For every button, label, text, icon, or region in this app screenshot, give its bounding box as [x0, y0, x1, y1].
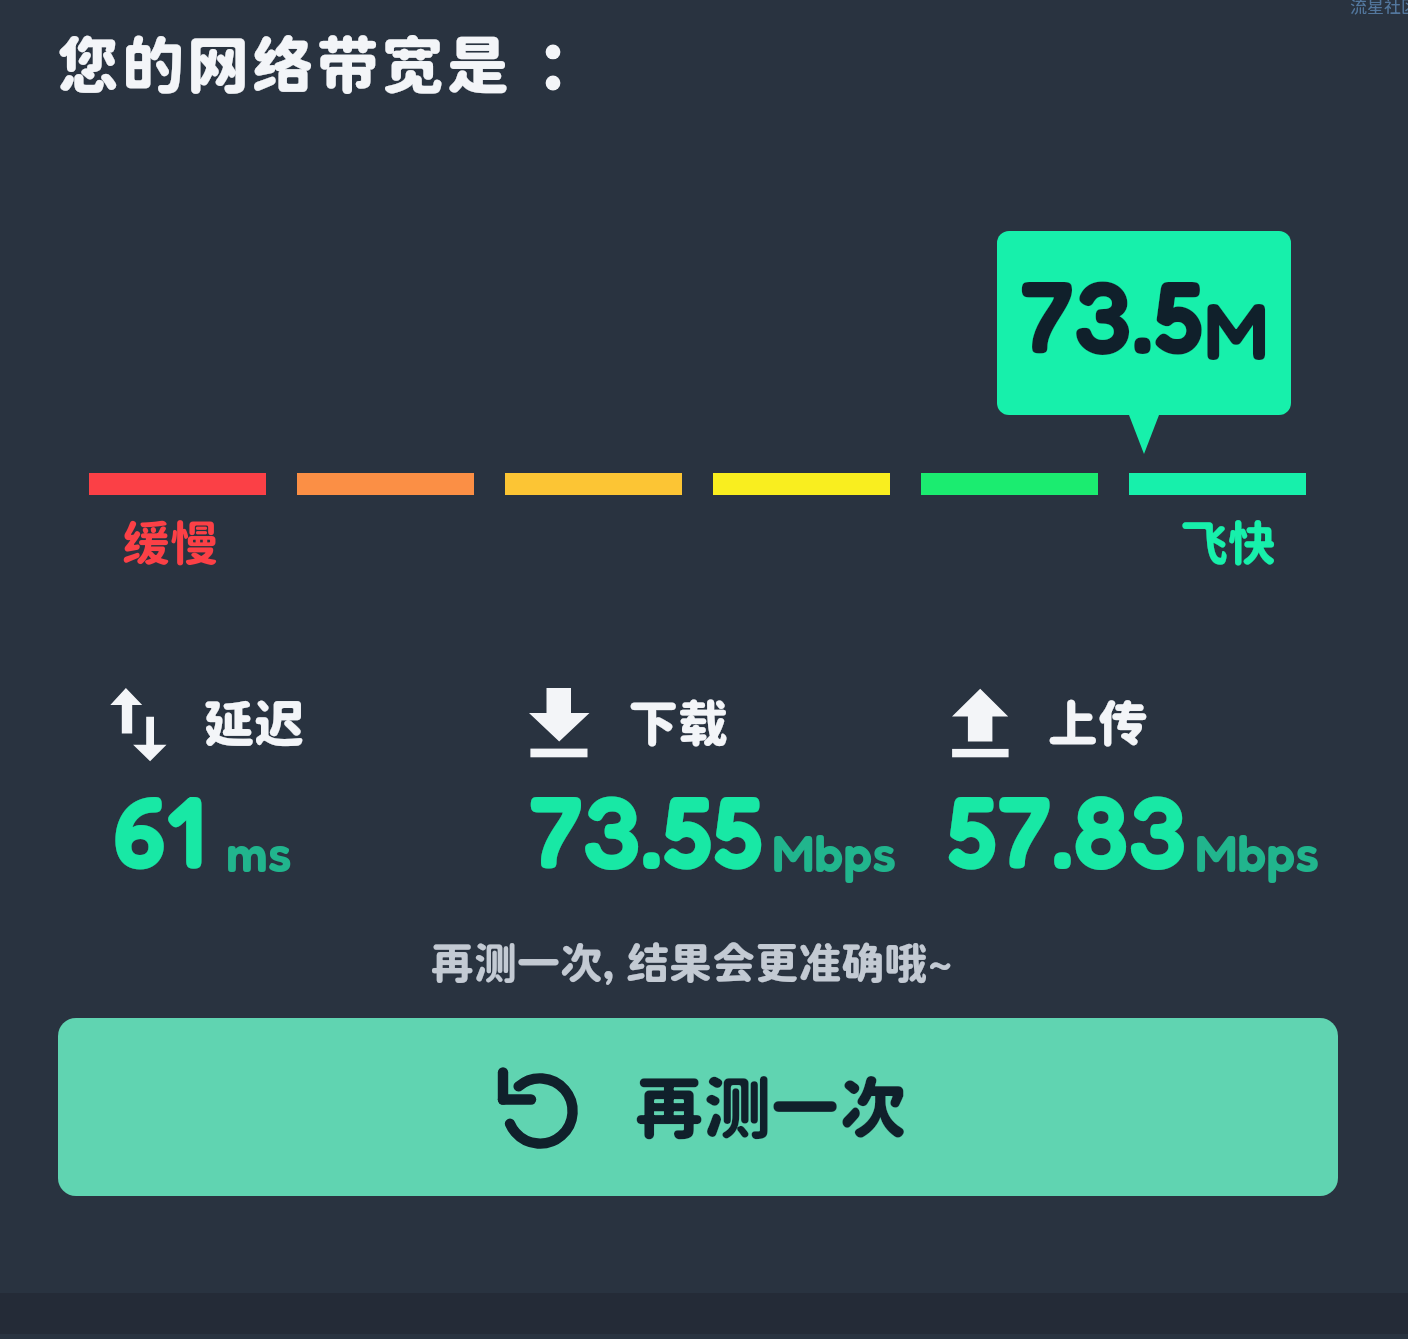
button[interactable]: Retest: [58, 1018, 1338, 1196]
staticText: 您的网络带宽是: [57, 28, 512, 101]
staticText: 61: [113, 770, 205, 892]
staticText: Mbps: [1195, 821, 1320, 884]
other: ：: [540, 40, 568, 96]
staticText: 再测一次, 结果会更准确哦~: [0, 937, 1396, 988]
staticText: 延迟: [204, 693, 304, 752]
staticText: M: [1204, 282, 1269, 378]
staticText: 缓慢: [122, 514, 219, 571]
staticText: 飞快: [1180, 514, 1277, 571]
staticText: Mbps: [772, 821, 897, 884]
staticText: 上传: [1048, 693, 1148, 752]
staticText: 57.83: [947, 770, 1187, 892]
staticText: 流星社区: [1350, 0, 1408, 17]
staticText: 再测一次: [635, 1067, 908, 1147]
staticText: 73.55: [529, 770, 764, 892]
staticText: 下载: [628, 693, 728, 752]
other: Retest: [489, 1059, 579, 1155]
staticText: 73.5: [1020, 255, 1205, 377]
staticText: ms: [226, 821, 292, 884]
